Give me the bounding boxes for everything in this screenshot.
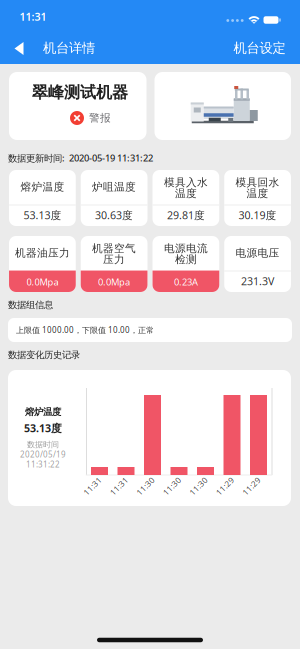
staticText: 0.0Mpa [98,276,130,288]
staticText: 电源电流 [164,242,208,255]
staticText: 上限值 1000.00，下限值 10.00，正常 [16,325,154,335]
staticText: 熔炉温度 [20,180,64,193]
staticText: 模具入水 [164,176,208,189]
staticText: 压力 [103,253,125,266]
staticText: 0.23A [174,276,198,288]
staticText: 30.63度 [95,208,133,222]
staticText: 数据组信息 [8,299,53,311]
staticText: 11:31 [108,481,130,491]
button[interactable]: 翠峰测试机器 [9,72,146,140]
button[interactable]: Back [6,32,32,64]
staticText: 0.0Mpa [26,276,58,288]
staticText: 温度 [175,187,197,200]
staticText: 警报 [89,111,111,124]
button[interactable]: 熔炉温度 [9,170,76,226]
staticText: 11:31 [81,481,103,491]
staticText: 炉咀温度 [92,180,136,193]
staticText: 机台详情 [43,40,95,56]
staticText: 231.3V [241,274,274,288]
staticText: 11:31 [19,9,46,24]
staticText: 模具回水 [236,176,280,189]
staticText: 11:31:22 [26,459,60,470]
staticText: 53.13度 [23,208,61,222]
button[interactable]: 炉咀温度 [81,170,147,226]
staticText: 机台设定 [233,40,285,56]
button[interactable]: 模具入水 [152,170,219,226]
staticText: 检测 [175,253,197,266]
staticText: 11:29 [240,481,262,491]
staticText: 2020/05/19 [20,449,66,460]
staticText: 数据变化历史记录 [8,349,80,361]
staticText: 11:29 [214,481,236,491]
staticText: 数据时间 [27,440,59,449]
staticText: 数据更新时间: 2020-05-19 11:31:22 [8,152,153,164]
staticText: 机器油压力 [15,246,70,259]
staticText: 熔炉温度 [25,406,61,418]
staticText: 30.19度 [239,208,277,222]
staticText: 温度 [247,187,269,200]
button[interactable]: 机台设定 [226,32,292,64]
staticText: 翠峰测试机器 [32,83,128,102]
staticText: 11:30 [161,481,183,491]
staticText: 53.13度 [24,421,62,435]
button[interactable]: 机台图片 [154,72,291,140]
button[interactable]: 电源电流 [152,236,219,292]
button[interactable]: 电源电压 [224,236,291,292]
staticText: 电源电压 [236,246,280,259]
button[interactable]: 机器油压力 [9,236,76,292]
button[interactable]: 模具回水 [224,170,291,226]
button[interactable]: 机器空气 [81,236,147,292]
staticText: 11:30 [187,481,209,491]
staticText: 机器空气 [92,242,136,255]
staticText: 29.81度 [167,208,205,222]
staticText: 11:30 [134,481,156,491]
